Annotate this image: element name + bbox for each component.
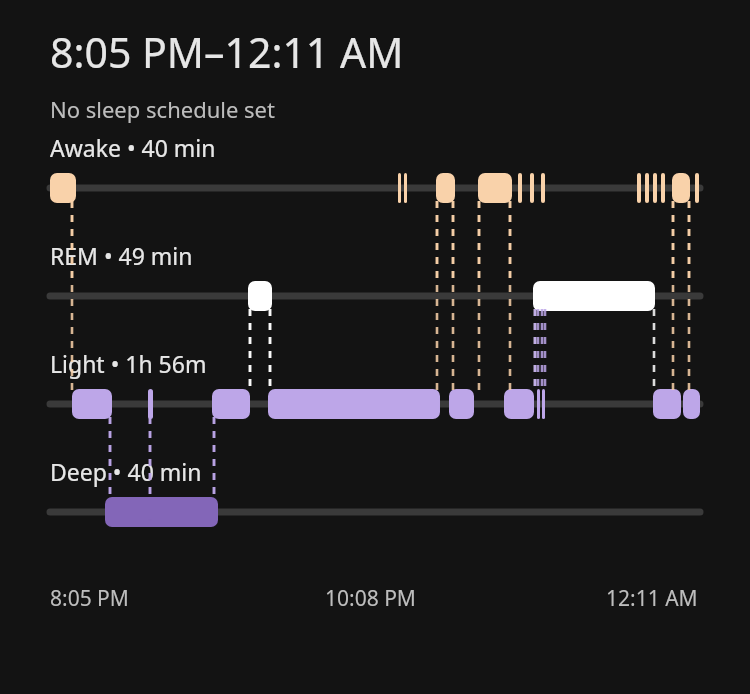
button[interactable]: Light • 1h 56m bbox=[50, 348, 207, 379]
staticText: No sleep schedule set bbox=[50, 94, 275, 124]
button[interactable]: Awake • 40 min bbox=[50, 132, 216, 163]
staticText: 12:11 AM bbox=[606, 584, 698, 613]
button[interactable]: Awake • 40 min bbox=[0, 124, 750, 584]
button[interactable]: Deep • 40 min bbox=[50, 456, 202, 487]
staticText: 10:08 PM bbox=[325, 584, 416, 613]
button[interactable]: 8:05 PM–12:11 AM bbox=[50, 24, 404, 80]
staticText: 8:05 PM bbox=[50, 584, 129, 613]
button[interactable]: REM • 49 min bbox=[50, 240, 193, 271]
